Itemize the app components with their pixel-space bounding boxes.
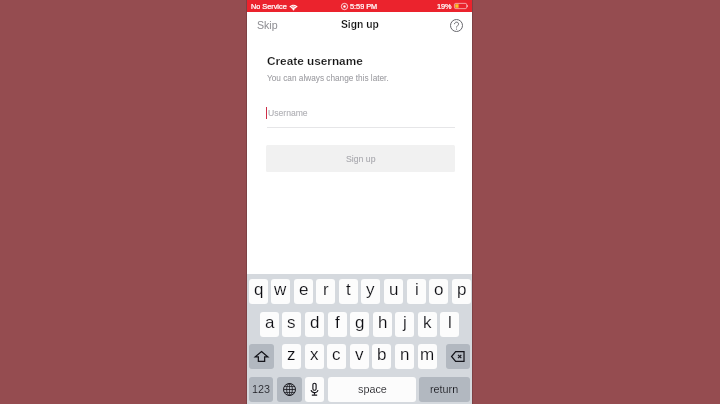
button[interactable]: b (372, 344, 391, 369)
staticText: Sign up (341, 19, 379, 31)
button[interactable]: Switch keyboard (277, 377, 302, 402)
button[interactable]: Skip (253, 16, 282, 34)
staticText: w (274, 280, 287, 299)
staticText: o (434, 280, 444, 299)
staticText: b (377, 345, 387, 364)
staticText: v (355, 345, 364, 364)
button[interactable]: y (361, 279, 380, 304)
staticText: z (287, 345, 296, 364)
staticText: Skip (257, 19, 278, 31)
button[interactable]: n (395, 344, 414, 369)
staticText: l (448, 313, 452, 332)
staticText: e (299, 280, 309, 299)
button[interactable]: e (294, 279, 313, 304)
staticText: m (420, 345, 435, 364)
staticText: g (355, 313, 365, 332)
staticText: 5:59 PM (350, 2, 378, 10)
button[interactable]: Dictate (305, 377, 324, 402)
staticText: return (430, 383, 459, 395)
staticText: s (287, 313, 296, 332)
staticText: n (400, 345, 410, 364)
button[interactable]: i (407, 279, 426, 304)
button[interactable]: d (305, 312, 324, 337)
staticText: space (358, 383, 387, 395)
staticText: Username (268, 108, 308, 118)
staticText: y (366, 280, 375, 299)
staticText: j (403, 313, 407, 332)
button[interactable]: f (328, 312, 347, 337)
button[interactable]: u (384, 279, 403, 304)
button[interactable]: q (249, 279, 268, 304)
staticText: Sign up (346, 154, 376, 164)
button[interactable]: v (350, 344, 369, 369)
staticText: Create username (267, 54, 363, 67)
button[interactable]: t (339, 279, 358, 304)
staticText: u (389, 280, 399, 299)
button[interactable]: m (418, 344, 437, 369)
button[interactable]: s (282, 312, 301, 337)
button[interactable]: 123 (249, 377, 273, 402)
staticText: r (323, 280, 329, 299)
staticText: d (310, 313, 320, 332)
staticText: 123 (252, 383, 271, 395)
staticText: f (335, 313, 340, 332)
staticText: 19% (437, 2, 452, 10)
staticText: c (332, 345, 341, 364)
button[interactable]: o (429, 279, 448, 304)
button[interactable]: h (373, 312, 392, 337)
staticText: k (423, 313, 432, 332)
staticText: No Service (251, 2, 287, 10)
staticText: p (457, 280, 467, 299)
staticText: h (378, 313, 388, 332)
button[interactable]: z (282, 344, 301, 369)
staticText: x (310, 345, 319, 364)
button[interactable]: Help (448, 17, 465, 34)
staticText: You can always change this later. (267, 74, 389, 83)
button[interactable]: Shift (249, 344, 274, 369)
staticText: i (415, 280, 419, 299)
button[interactable]: Backspace (446, 344, 470, 369)
button[interactable]: p (452, 279, 471, 304)
button[interactable]: r (316, 279, 335, 304)
button[interactable]: l (440, 312, 459, 337)
button[interactable]: space (328, 377, 416, 402)
button[interactable]: g (350, 312, 369, 337)
button[interactable]: Sign up (266, 145, 455, 172)
staticText: t (346, 280, 351, 299)
button[interactable]: k (418, 312, 437, 337)
staticText: a (265, 313, 275, 332)
button[interactable]: j (395, 312, 414, 337)
staticText: q (254, 280, 264, 299)
button[interactable]: c (327, 344, 346, 369)
button[interactable]: x (305, 344, 324, 369)
button[interactable]: a (260, 312, 279, 337)
button[interactable]: return (419, 377, 470, 402)
button[interactable]: w (271, 279, 290, 304)
